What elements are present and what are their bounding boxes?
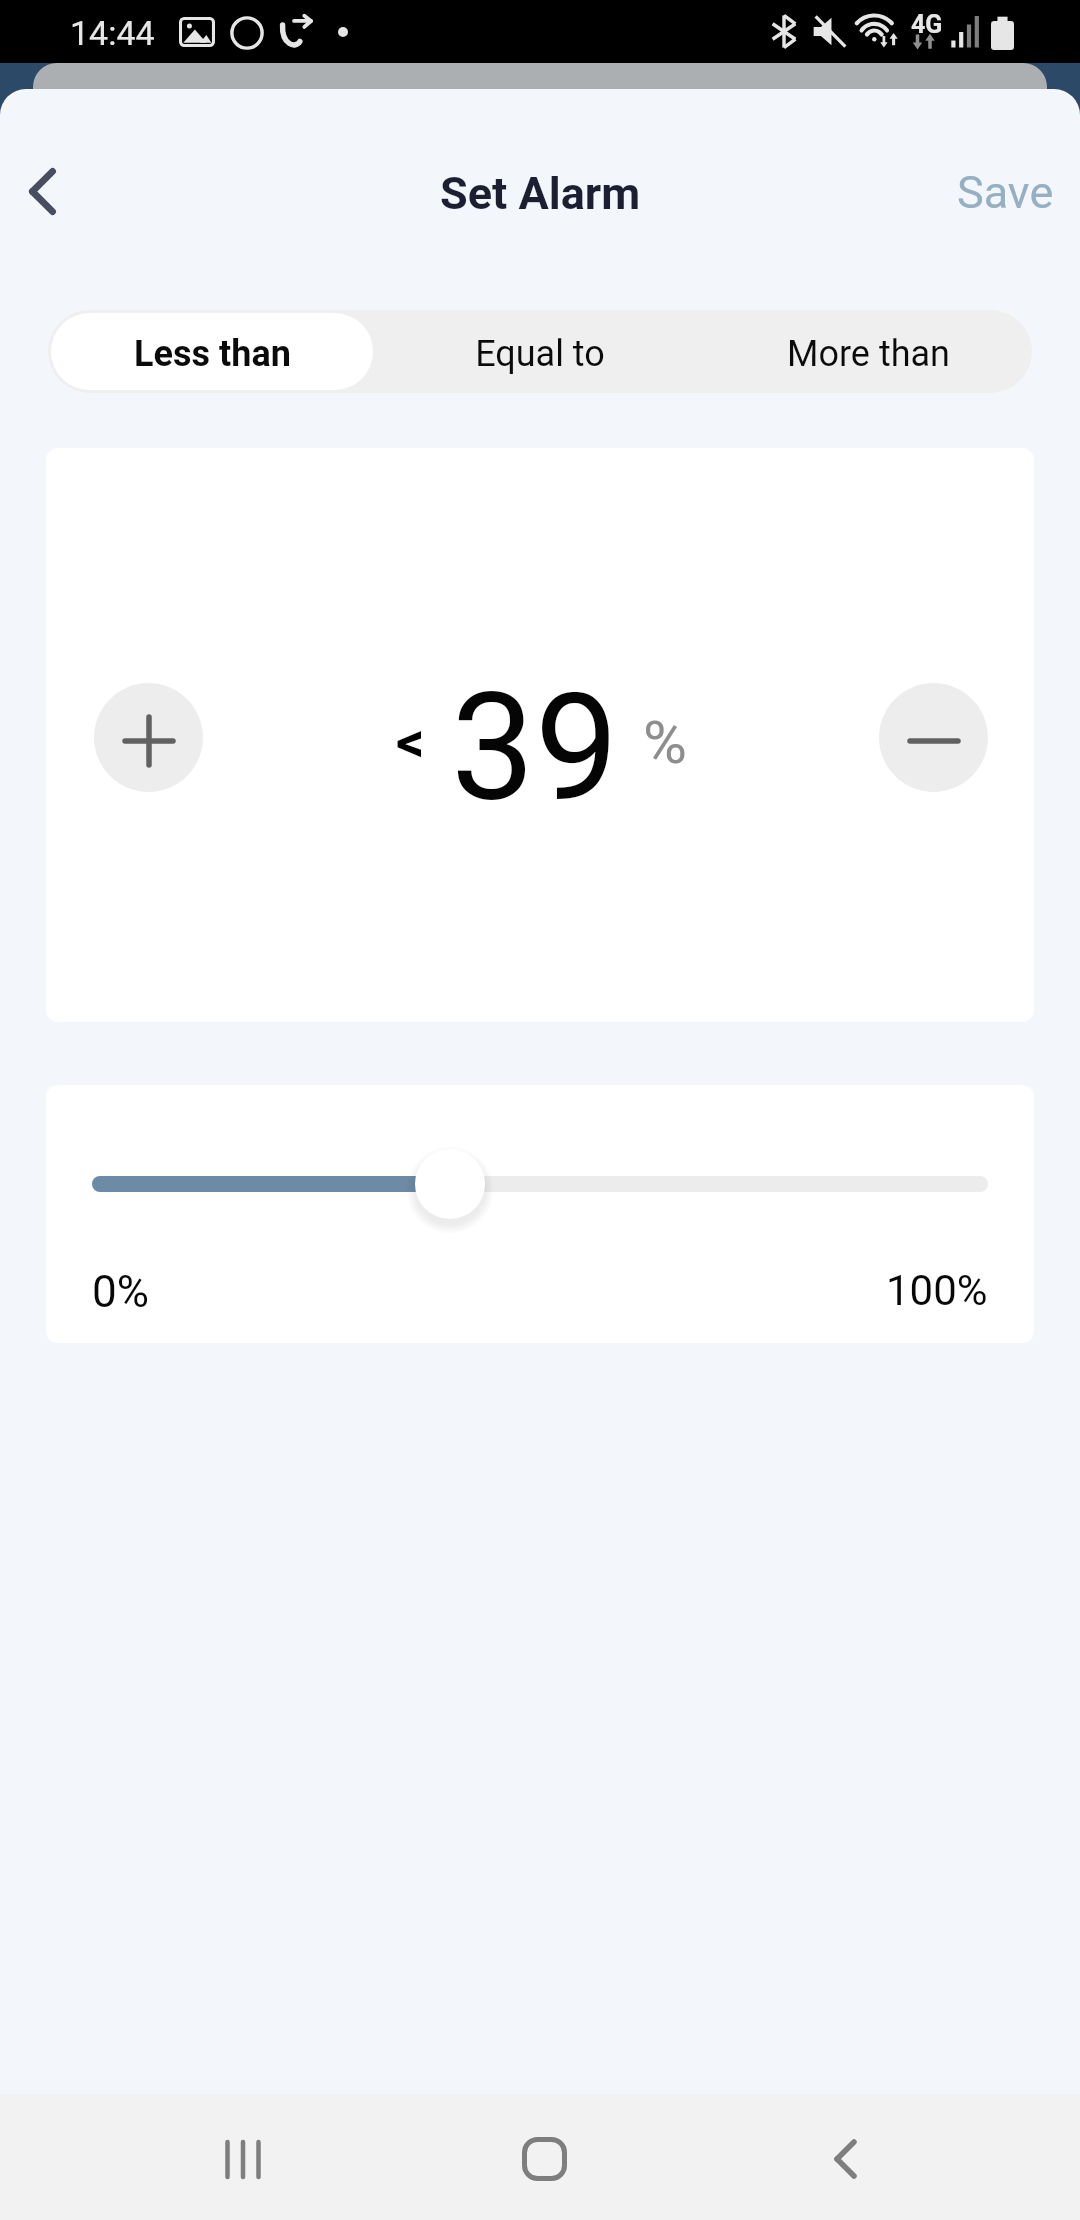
- staticText: Equal to: [475, 333, 605, 375]
- staticText: <: [396, 709, 425, 775]
- button[interactable]: Increase: [94, 683, 203, 792]
- button[interactable]: Back: [790, 2104, 900, 2214]
- button[interactable]: Decrease: [879, 683, 988, 792]
- button[interactable]: Equal to: [379, 313, 701, 390]
- staticText: 100%: [886, 1266, 988, 1315]
- button[interactable]: Less than: [51, 313, 373, 390]
- staticText: 14:44: [70, 13, 155, 53]
- button[interactable]: Recent apps: [187, 2104, 297, 2214]
- staticText: Less than: [134, 333, 291, 375]
- staticText: Set Alarm: [440, 167, 641, 220]
- staticText: %: [643, 707, 687, 777]
- staticText: 0%: [92, 1266, 149, 1318]
- staticText: 4G: [911, 10, 943, 39]
- button[interactable]: Home: [489, 2104, 599, 2214]
- staticText: 39: [451, 661, 619, 836]
- button[interactable]: More than: [707, 313, 1029, 390]
- staticText: Save: [957, 166, 1054, 219]
- button[interactable]: Save: [926, 152, 1080, 233]
- staticText: More than: [787, 333, 950, 375]
- button[interactable]: Back: [6, 155, 78, 227]
